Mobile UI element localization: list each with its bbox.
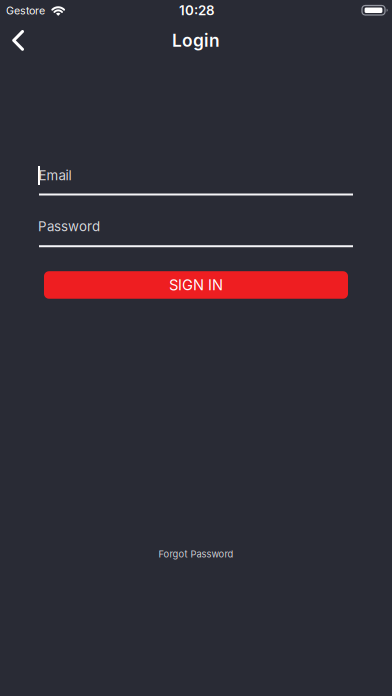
staticText: Email	[38, 168, 71, 183]
button[interactable]: SIGN IN	[44, 271, 348, 299]
button[interactable]	[0, 29, 24, 51]
button[interactable]: Password	[0, 218, 392, 247]
staticText: Password	[38, 218, 100, 234]
button[interactable]: Forgot Password	[158, 548, 233, 559]
staticText: Login	[172, 30, 220, 51]
staticText: Gestore	[6, 4, 45, 17]
staticText: Forgot Password	[158, 548, 233, 559]
staticText: 10:28	[179, 3, 215, 18]
button[interactable]: Email	[0, 166, 392, 195]
staticText: SIGN IN	[169, 276, 223, 294]
